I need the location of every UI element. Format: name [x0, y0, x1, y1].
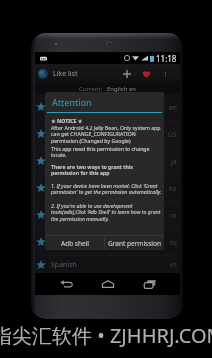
- staticText: English: [51, 129, 75, 139]
- button[interactable]: More options: [159, 68, 171, 80]
- staticText: 指尖汇软件 • ZJHHRJ.COM: [0, 322, 212, 349]
- staticText: en: [169, 103, 177, 112]
- staticText: ro: [170, 211, 177, 220]
- staticText: Grant permission: [108, 239, 161, 248]
- button[interactable]: Add: [118, 65, 135, 82]
- staticText: This app need this permission to change …: [51, 145, 162, 159]
- staticText: Korean: [51, 183, 75, 193]
- staticText: ★ NOTICE ★: [51, 117, 83, 124]
- staticText: Japanese: [51, 156, 81, 166]
- staticText: Romanian: [51, 210, 85, 220]
- staticText: ja: [171, 157, 177, 166]
- staticText: 1. If your device have been rooted. Clic…: [51, 182, 162, 196]
- button[interactable]: Grant permission: [105, 236, 164, 250]
- button[interactable]: Romanian: [35, 202, 180, 228]
- button[interactable]: Adb shell: [45, 236, 104, 250]
- staticText: English en: [107, 85, 137, 93]
- staticText: Like list: [53, 69, 78, 79]
- staticText: Adb shell: [61, 239, 89, 248]
- button[interactable]: English: [35, 94, 180, 120]
- staticText: There are two ways to grant this permiss…: [51, 163, 162, 177]
- button[interactable]: App icon: [38, 69, 48, 79]
- staticText: es: [170, 260, 177, 269]
- staticText: After Android 4.2 Jelly Bean, Only syste…: [51, 124, 162, 145]
- button[interactable]: Japanese: [35, 148, 180, 174]
- staticText: US: [168, 130, 177, 139]
- staticText: Russian: [51, 237, 77, 247]
- button[interactable]: Spanish: [35, 256, 180, 273]
- staticText: Attention: [52, 96, 92, 108]
- staticText: English: [51, 102, 75, 112]
- staticText: 11:18: [156, 53, 177, 64]
- staticText: 2. If you're able to use development too…: [51, 202, 162, 223]
- button[interactable]: Korean: [35, 175, 180, 201]
- staticText: Spanish: [51, 260, 77, 270]
- staticText: ru: [170, 238, 177, 247]
- button[interactable]: Favorites: [138, 65, 155, 82]
- button[interactable]: Home: [97, 273, 119, 295]
- button[interactable]: Back: [55, 273, 77, 295]
- button[interactable]: English: [35, 121, 180, 147]
- button[interactable]: Russian: [35, 229, 180, 255]
- staticText: ko: [169, 184, 177, 193]
- button[interactable]: Recent apps: [138, 273, 160, 295]
- staticText: Current:: [79, 85, 103, 93]
